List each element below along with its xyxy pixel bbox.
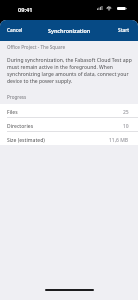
other: Battery [117,7,127,10]
staticText: Synchronization [48,27,91,34]
staticText: Size (estimated) [7,137,45,144]
button[interactable]: Directories [0,118,138,132]
button[interactable]: Files [0,104,138,118]
staticText: Progress [7,94,27,100]
staticText: Office Project - The Square [7,44,66,50]
button[interactable]: Start [113,23,138,38]
staticText: 09:41 [18,6,33,14]
staticText: During synchronization, the Fabasoft Clo… [7,57,132,85]
staticText: Directories [7,123,34,130]
staticText: Cancel [7,27,23,34]
staticText: 25 [123,109,129,116]
staticText: 11,6 MB [109,137,129,144]
button[interactable]: Size (estimated) [0,132,138,145]
button[interactable]: Cancel [0,23,28,38]
staticText: Files [7,109,18,116]
staticText: 10 [123,123,129,130]
staticText: Start [118,27,130,34]
